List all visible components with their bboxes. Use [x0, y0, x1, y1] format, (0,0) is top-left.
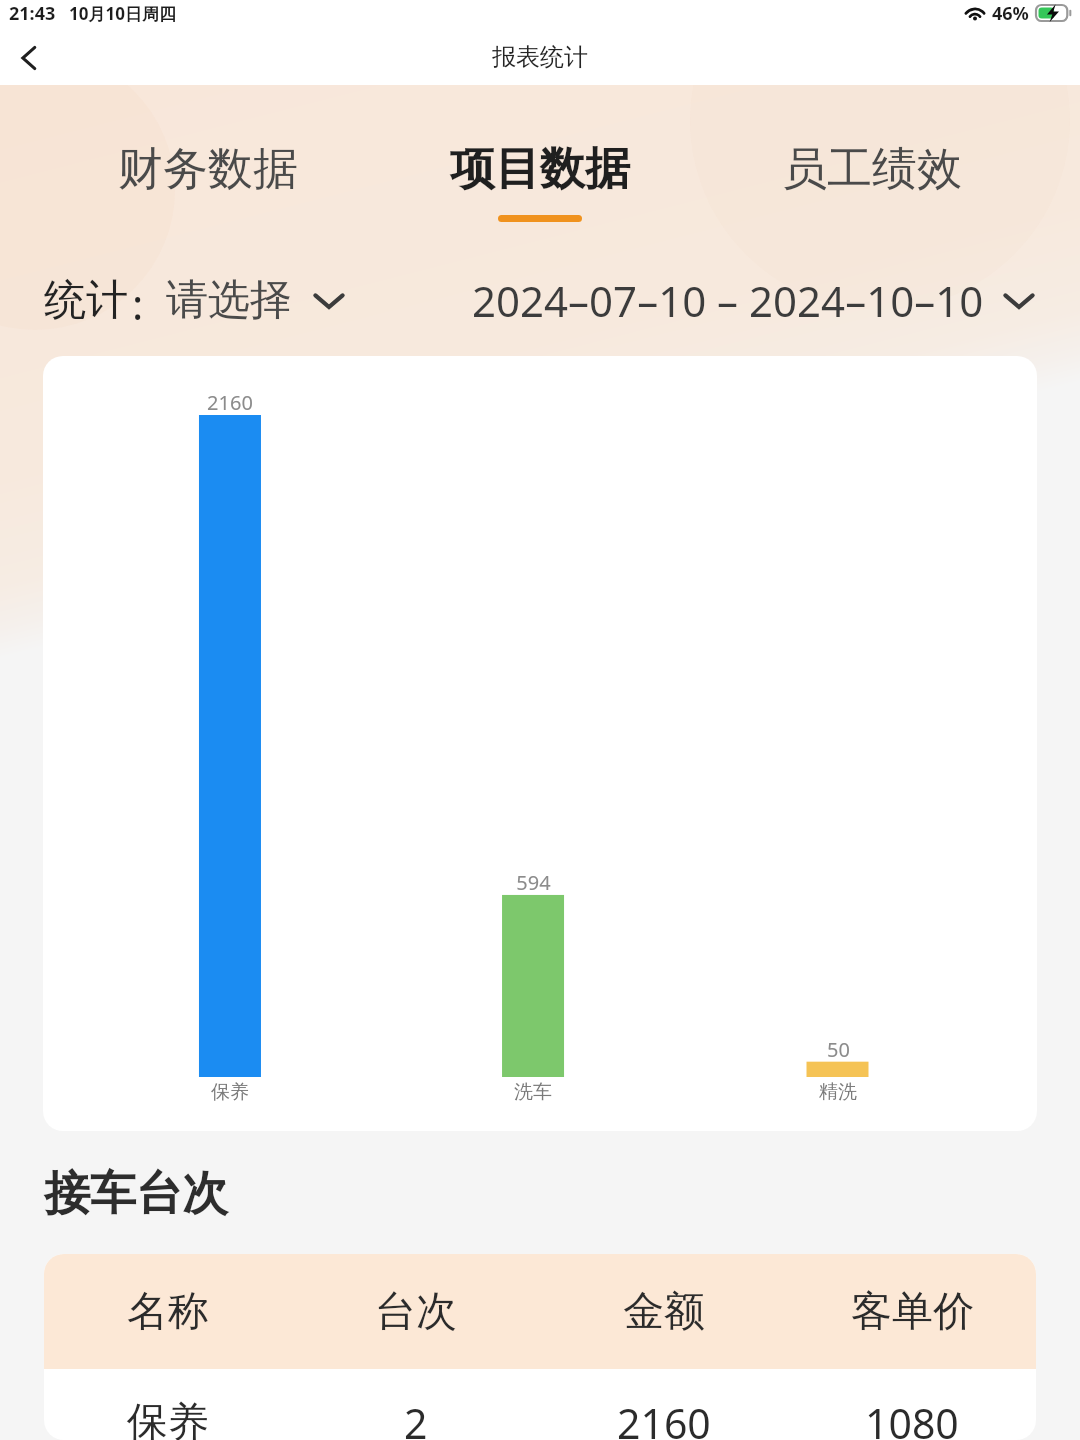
staticText: 报表统计 [492, 42, 588, 72]
staticText: 财务数据 [118, 141, 298, 198]
staticText: 保养 [127, 1397, 209, 1440]
button[interactable]: 保养 [44, 1387, 1036, 1440]
staticText: 名称 [127, 1286, 209, 1338]
staticText: : [132, 275, 144, 332]
staticText: 请选择 [166, 274, 292, 327]
staticText: 精洗 [819, 1080, 857, 1104]
other: Battery 46 percent, charging [1035, 4, 1072, 22]
button[interactable]: 项目数据 [374, 141, 706, 222]
button[interactable]: 财务数据 [42, 141, 374, 222]
staticText: 1080 [865, 1395, 959, 1440]
staticText: 50 [827, 1036, 850, 1063]
button[interactable]: 2160 [43, 356, 1037, 1131]
staticText: 2160 [207, 389, 253, 416]
staticText: 金额 [623, 1286, 705, 1338]
staticText: 21:43 [9, 1, 56, 26]
staticText: 594 [516, 869, 551, 896]
button[interactable]: 统计 [44, 272, 346, 329]
staticText: 2160 [617, 1395, 711, 1440]
staticText: 保养 [211, 1080, 249, 1104]
staticText: 10月10日周四 [69, 2, 176, 25]
button[interactable]: Back [6, 36, 50, 80]
staticText: 2 [404, 1395, 428, 1440]
staticText: 统计 [44, 274, 128, 327]
staticText: 台次 [375, 1286, 457, 1338]
staticText: 员工绩效 [782, 141, 962, 198]
staticText: 洗车 [514, 1080, 552, 1104]
other: Wi-Fi [965, 6, 985, 21]
button[interactable]: 员工绩效 [706, 141, 1038, 222]
staticText: 项目数据 [450, 141, 630, 198]
staticText: 客单价 [851, 1286, 974, 1338]
staticText: 接车台次 [44, 1165, 228, 1223]
staticText: 2024–07–10 – 2024–10–10 [472, 272, 984, 329]
staticText: 46% [992, 1, 1029, 26]
button[interactable]: 2024–07–10 – 2024–10–10 [472, 272, 1036, 329]
